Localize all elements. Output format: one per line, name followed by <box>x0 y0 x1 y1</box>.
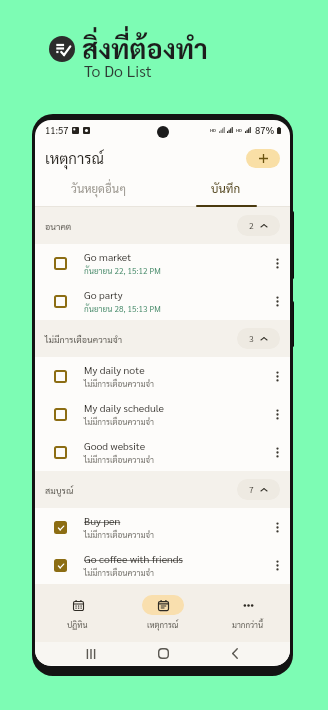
staticText: ปฏิทิน <box>67 619 88 629</box>
button[interactable]: Mark complete <box>36 282 84 320</box>
button[interactable]: Add event <box>246 149 280 168</box>
button[interactable]: Mark incomplete <box>36 546 84 584</box>
staticText: 3 <box>249 333 254 344</box>
button[interactable]: More options <box>264 282 290 320</box>
button[interactable]: Mark complete <box>35 357 290 395</box>
staticText: สมบูรณ์ <box>45 484 74 496</box>
button[interactable]: บันทึก <box>162 177 290 207</box>
staticText: 87% <box>255 124 275 136</box>
button[interactable]: More options <box>264 508 290 546</box>
button[interactable]: More options <box>264 546 290 584</box>
button[interactable]: Home <box>127 642 199 665</box>
button[interactable]: Back <box>199 642 271 665</box>
staticText: Go market <box>84 250 132 264</box>
button[interactable]: มากกว่านี้ <box>205 584 290 642</box>
button[interactable]: วันหยุดอื่นๆ <box>35 177 162 207</box>
button[interactable]: Recents <box>55 642 127 665</box>
button[interactable]: Mark incomplete <box>36 508 84 546</box>
button[interactable]: More options <box>264 433 290 471</box>
staticText: 2 <box>249 220 254 231</box>
button[interactable]: Mark complete <box>36 357 84 395</box>
staticText: HD <box>236 127 243 133</box>
staticText: เหตุการณ์ <box>147 619 179 629</box>
button[interactable]: More options <box>264 244 290 282</box>
staticText: My daily schedule <box>84 401 164 415</box>
button[interactable]: Mark complete <box>35 433 290 471</box>
button[interactable]: Mark complete <box>35 282 290 320</box>
staticText: ไม่มีการเตือนความจำ <box>84 454 155 465</box>
staticText: 7 <box>249 484 254 495</box>
staticText: บันทึก <box>211 181 241 196</box>
staticText: My daily note <box>84 363 145 377</box>
button[interactable]: Mark incomplete <box>35 546 290 584</box>
button[interactable]: More options <box>264 395 290 433</box>
staticText: วันหยุดอื่นๆ <box>71 181 127 196</box>
staticText: Go coffee with friends <box>84 552 183 566</box>
staticText: Buy pen <box>84 514 121 528</box>
staticText: ไม่มีการเตือนความจำ <box>84 416 155 427</box>
staticText: สิ่งที่ต้องทำ <box>82 30 208 65</box>
staticText: Good website <box>84 439 146 453</box>
button[interactable]: สมบูรณ์ <box>45 471 280 508</box>
staticText: ไม่มีการเตือนความจำ <box>84 378 155 389</box>
button[interactable]: Mark complete <box>36 395 84 433</box>
staticText: กันยายน 28, 15:13 PM <box>84 303 161 314</box>
staticText: To Do List <box>84 60 152 81</box>
staticText: ไม่มีการเตือนความจำ <box>45 333 123 345</box>
staticText: ไม่มีการเตือนความจำ <box>84 567 155 578</box>
button[interactable]: Mark complete <box>36 244 84 282</box>
staticText: กันยายน 22, 15:12 PM <box>84 265 161 276</box>
staticText: มากกว่านี้ <box>232 619 264 629</box>
staticText: อนาคต <box>45 220 72 232</box>
button[interactable]: ปฏิทิน <box>35 584 120 642</box>
button[interactable]: Mark complete <box>35 244 290 282</box>
button[interactable]: Mark complete <box>35 395 290 433</box>
staticText: เหตุการณ์ <box>45 148 104 167</box>
button[interactable]: More options <box>264 357 290 395</box>
button[interactable]: Mark complete <box>36 433 84 471</box>
button[interactable]: ไม่มีการเตือนความจำ <box>45 320 280 357</box>
staticText: Go party <box>84 288 123 302</box>
staticText: ไม่มีการเตือนความจำ <box>84 529 155 540</box>
button[interactable]: เหตุการณ์ <box>120 584 205 642</box>
button[interactable]: Mark incomplete <box>35 508 290 546</box>
staticText: 11:57 <box>45 124 69 136</box>
button[interactable]: อนาคต <box>45 207 280 244</box>
staticText: HD <box>210 127 217 133</box>
